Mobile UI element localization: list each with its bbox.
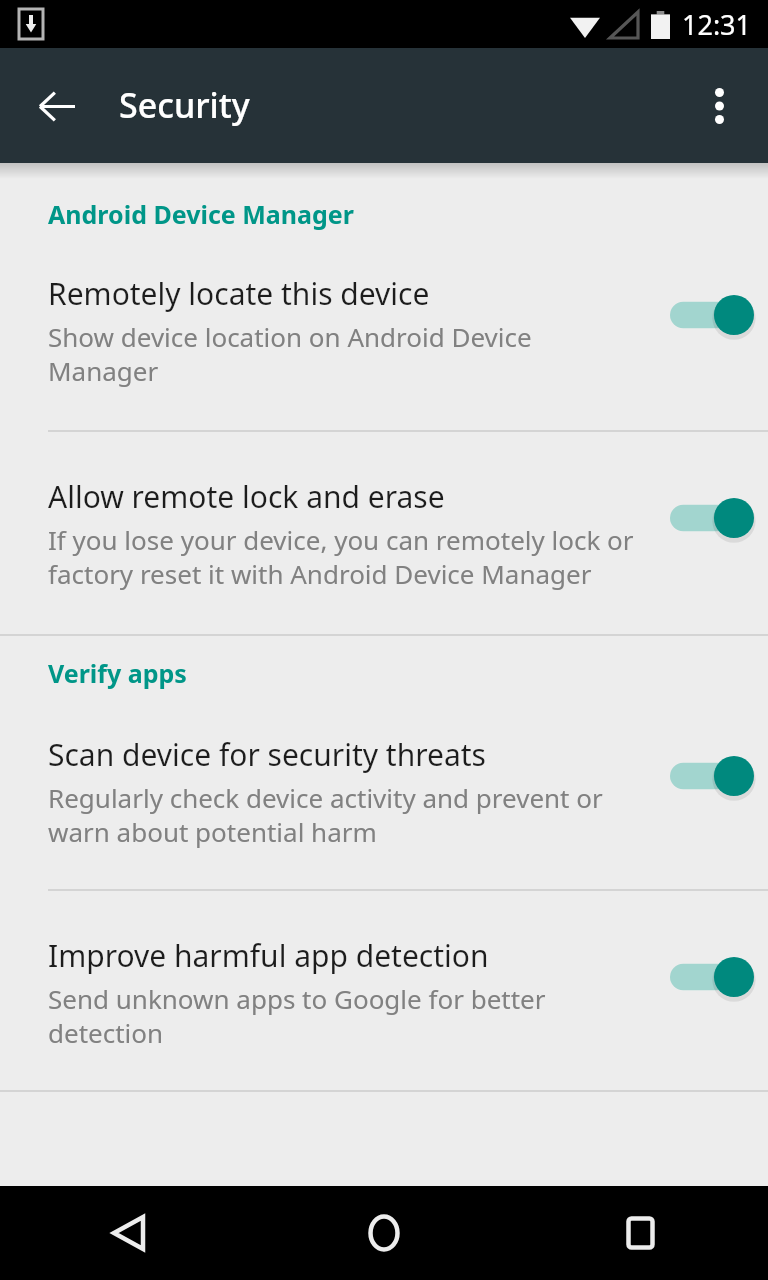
staticText: Remotely locate this device [48, 273, 430, 314]
staticText: Send unknown apps to Google for better d… [48, 981, 546, 1050]
staticText: If you lose your device, you can remotel… [48, 522, 634, 591]
staticText: Improve harmful app detection [48, 935, 489, 976]
staticText: Scan device for security threats [48, 734, 486, 775]
button[interactable]: Remotely locate this device [0, 273, 768, 388]
staticText: Verify apps [48, 656, 187, 690]
button[interactable]: On [670, 955, 754, 999]
button[interactable]: Improve harmful app detection [0, 935, 768, 1050]
button[interactable]: Navigate up [28, 77, 86, 135]
staticText: Show device location on Android Device M… [48, 319, 532, 388]
button[interactable]: Home [256, 1186, 512, 1280]
button[interactable]: On [670, 293, 754, 337]
button[interactable]: On [670, 496, 754, 540]
staticText: Android Device Manager [48, 197, 354, 231]
button[interactable]: Recent apps [512, 1186, 768, 1280]
button[interactable]: Allow remote lock and erase [0, 476, 768, 591]
button[interactable]: Scan device for security threats [0, 734, 768, 849]
button[interactable]: On [670, 754, 754, 798]
staticText: 12:31 [682, 6, 752, 43]
button[interactable]: Back [0, 1186, 256, 1280]
button[interactable]: More options [690, 77, 748, 135]
staticText: Allow remote lock and erase [48, 476, 445, 517]
staticText: Regularly check device activity and prev… [48, 780, 603, 849]
staticText: Security [119, 82, 250, 128]
